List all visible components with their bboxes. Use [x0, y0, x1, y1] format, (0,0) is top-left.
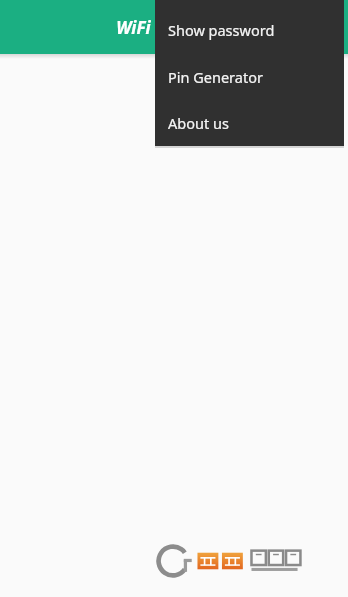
staticText: WiFi Password: [116, 16, 232, 39]
staticText: About us: [168, 113, 229, 133]
button[interactable]: Pin Generator: [155, 53, 344, 100]
button[interactable]: About us: [155, 100, 344, 146]
staticText: Show password: [168, 20, 275, 40]
button[interactable]: Show password: [155, 6, 344, 53]
staticText: Pin Generator: [168, 67, 263, 87]
